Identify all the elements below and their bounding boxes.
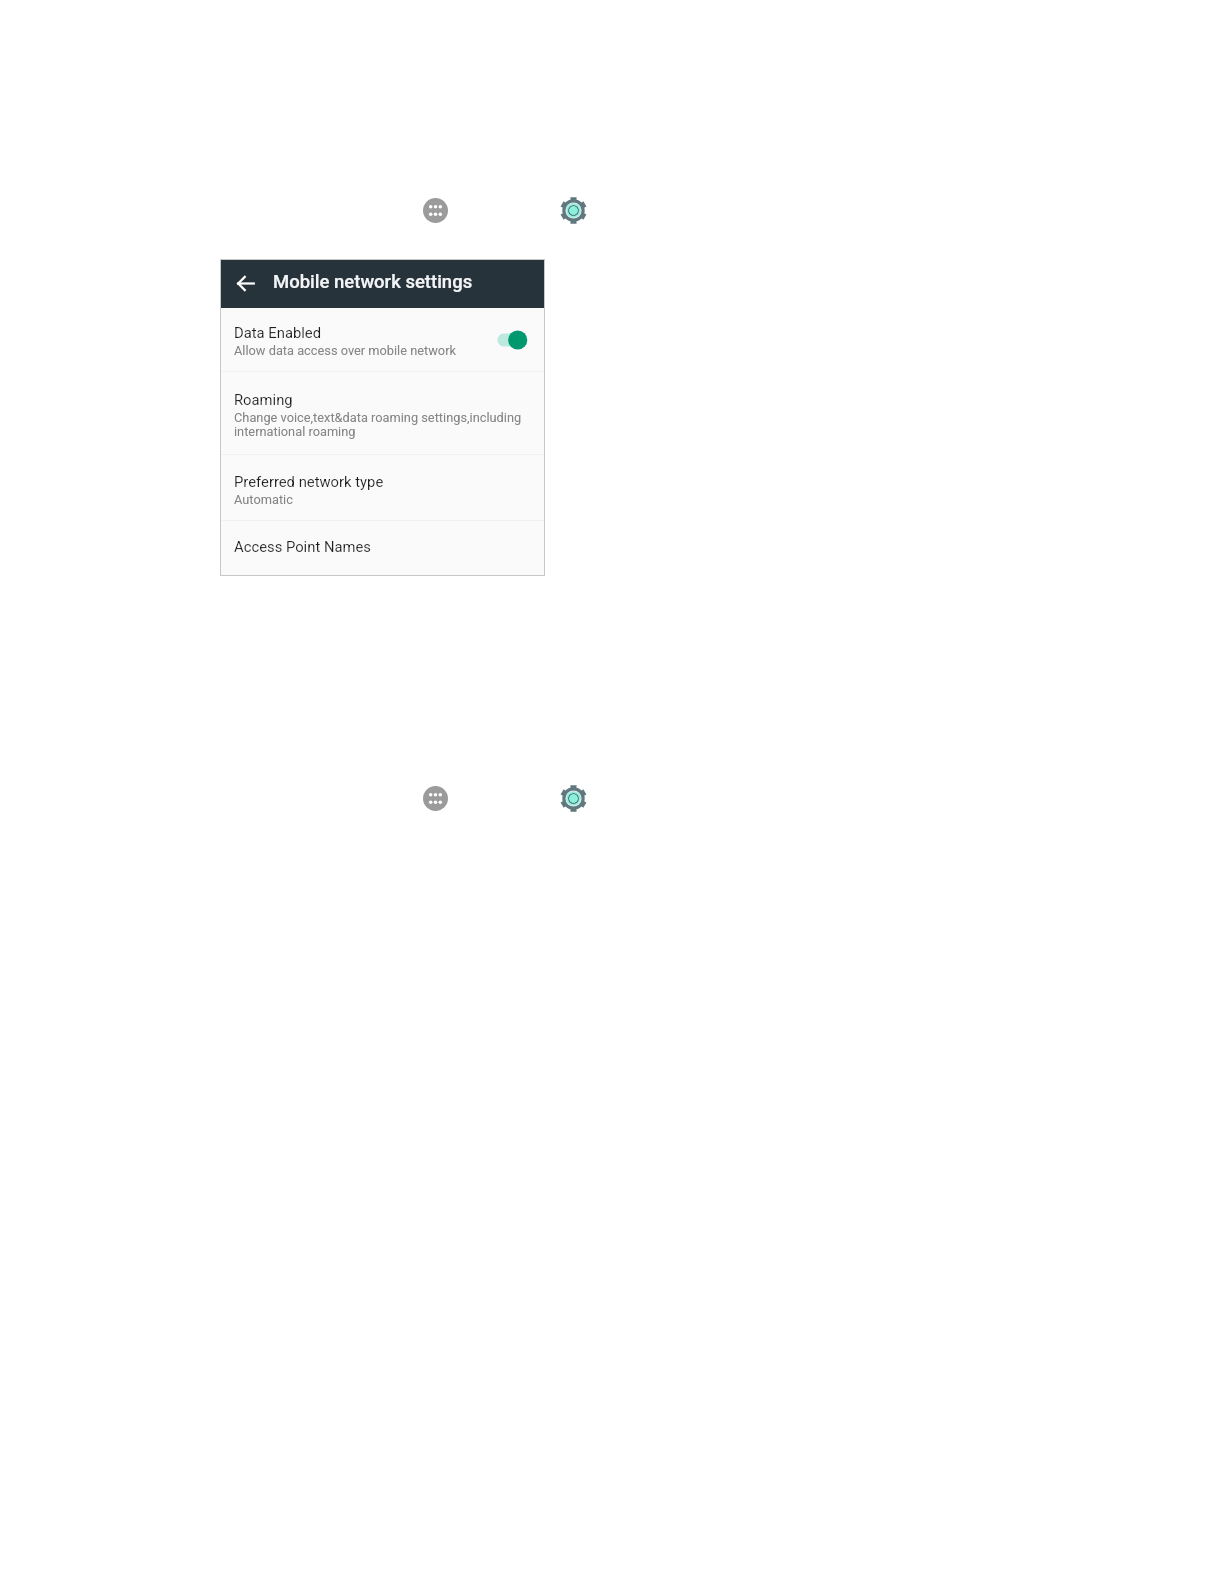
- button[interactable]: Data Enabled: [220, 308, 545, 371]
- button[interactable]: Apps: [423, 786, 448, 811]
- staticText: Access Point Names: [234, 538, 371, 555]
- staticText: Allow data access over mobile network: [234, 343, 456, 358]
- button[interactable]: Preferred network type: [220, 455, 545, 520]
- button[interactable]: Apps: [423, 198, 448, 223]
- staticText: Automatic: [234, 492, 293, 507]
- button[interactable]: Back: [231, 269, 260, 298]
- button[interactable]: Settings: [560, 784, 587, 813]
- button[interactable]: Access Point Names: [220, 521, 545, 575]
- staticText: Data Enabled: [234, 324, 322, 341]
- button[interactable]: Data Enabled toggle: [494, 326, 534, 352]
- staticText: Change voice,text&data roaming settings,…: [234, 410, 522, 440]
- button[interactable]: Settings: [560, 196, 587, 225]
- staticText: Preferred network type: [234, 473, 384, 490]
- staticText: Mobile network settings: [273, 271, 473, 293]
- button[interactable]: Roaming: [220, 372, 545, 454]
- staticText: Roaming: [234, 391, 293, 408]
